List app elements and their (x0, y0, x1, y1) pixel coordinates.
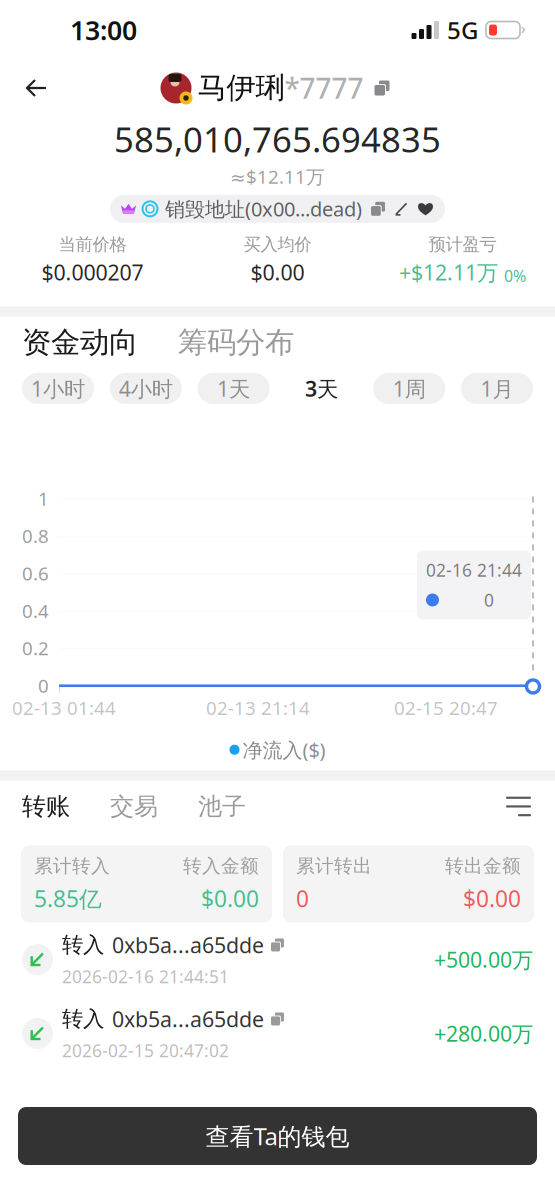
staticText: 1 (38, 486, 49, 511)
staticText: 当前价格 (58, 234, 126, 255)
staticText: 转账 (22, 792, 70, 821)
staticText: 1周 (393, 374, 426, 403)
button[interactable]: 资金动向 (22, 318, 138, 366)
staticText: 查看Ta的钱包 (205, 1120, 349, 1152)
staticText: 0.4 (22, 598, 49, 623)
staticText: 销毁地址(0x00...dead) (165, 195, 362, 222)
staticText: 02-13 01:44 (12, 695, 116, 720)
staticText: 1天 (217, 374, 250, 403)
button[interactable]: 3天 (285, 373, 357, 404)
button[interactable]: 4小时 (110, 373, 182, 404)
button[interactable]: 1月 (461, 373, 533, 404)
staticText: 净流入($) (242, 736, 325, 763)
button[interactable]: Sort (494, 786, 533, 826)
staticText: 筹码分布 (178, 324, 294, 360)
staticText: 池子 (198, 792, 246, 821)
staticText: 0 (296, 883, 309, 913)
staticText: 585,010,765.694835 (114, 116, 441, 162)
staticText: 1小时 (31, 374, 85, 403)
staticText: 02-16 21:44 (426, 558, 522, 581)
staticText: 0 (38, 673, 49, 698)
staticText: 转入 (62, 932, 104, 958)
button[interactable]: 1小时 (22, 373, 94, 404)
staticText: +500.00万 (434, 945, 533, 974)
staticText: +280.00万 (434, 1019, 533, 1048)
button[interactable]: 筹码分布 (138, 318, 294, 366)
button[interactable]: 查看Ta的钱包 (18, 1107, 537, 1165)
staticText: 02-13 21:14 (206, 695, 310, 720)
staticText: 马伊琍 (197, 70, 284, 106)
button[interactable]: 转入 (0, 996, 555, 1070)
staticText: $0.00 (201, 883, 259, 913)
staticText: 累计转入 (34, 854, 110, 877)
staticText: 转入金额 (183, 854, 259, 877)
staticText: 0xb5a...a65dde (112, 1005, 264, 1033)
staticText: 0% (504, 265, 526, 286)
button[interactable]: 转入 (0, 922, 555, 996)
staticText: 0.8 (22, 523, 49, 548)
staticText: $0.00 (250, 258, 304, 286)
staticText: 预计盈亏 (428, 234, 496, 255)
staticText: 资金动向 (22, 324, 138, 360)
staticText: 4小时 (119, 374, 173, 403)
staticText: 交易 (110, 792, 158, 821)
staticText: 买入均价 (243, 234, 311, 255)
staticText: *7777 (284, 69, 363, 107)
staticText: 转入 (62, 1006, 104, 1032)
staticText: $0.000207 (41, 258, 143, 286)
button[interactable]: 1天 (198, 373, 270, 404)
staticText: 0xb5a...a65dde (112, 931, 264, 959)
button[interactable]: 池子 (158, 784, 246, 829)
staticText: 02-15 20:47 (394, 695, 498, 720)
staticText: ≈$12.11万 (230, 164, 325, 189)
staticText: 0.2 (22, 636, 49, 660)
staticText: 5G (447, 14, 478, 46)
staticText: $0.00 (463, 883, 521, 913)
staticText: 0.6 (22, 561, 49, 586)
staticText: 0 (484, 588, 494, 611)
staticText: 5.85亿 (34, 883, 102, 913)
staticText: +$12.11万 (399, 258, 498, 286)
staticText: 3天 (305, 374, 338, 403)
staticText: 13:00 (70, 12, 137, 48)
button[interactable]: Copy address (363, 73, 395, 102)
button[interactable]: 转账 (22, 784, 70, 829)
button[interactable]: 1周 (373, 373, 445, 404)
staticText: 转出金额 (445, 854, 521, 877)
button[interactable]: 销毁地址(0x00...dead) (110, 195, 445, 223)
button[interactable]: 交易 (70, 784, 158, 829)
button[interactable]: Back (0, 65, 65, 111)
staticText: 累计转出 (296, 854, 372, 877)
staticText: 1月 (480, 374, 513, 403)
staticText: 2026-02-15 20:47:02 (62, 1039, 229, 1062)
staticText: 2026-02-16 21:44:51 (62, 965, 229, 988)
